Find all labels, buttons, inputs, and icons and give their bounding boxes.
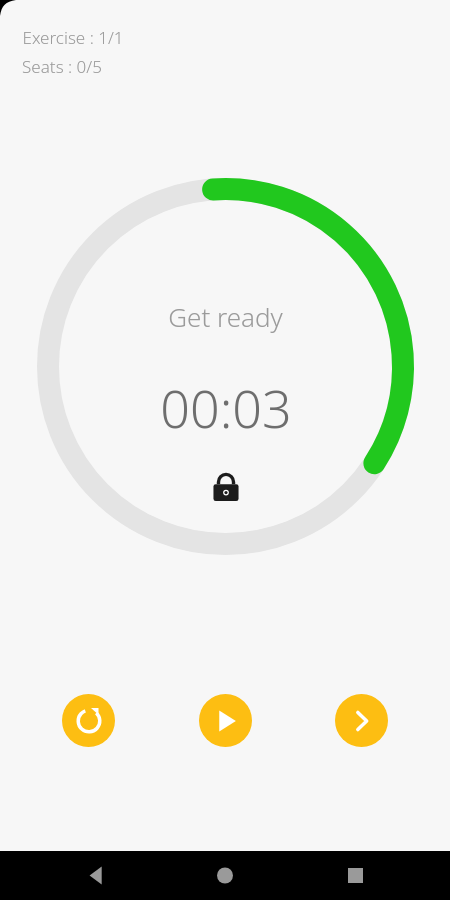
button[interactable]: Play (199, 694, 252, 747)
staticText: 00:03 (160, 372, 292, 443)
button[interactable]: Restart (62, 694, 115, 747)
staticText: Seats : 0/5 (22, 55, 102, 78)
button[interactable]: Next (335, 694, 388, 747)
staticText: Exercise : 1/1 (22, 26, 124, 49)
staticText: Get ready (168, 299, 283, 334)
